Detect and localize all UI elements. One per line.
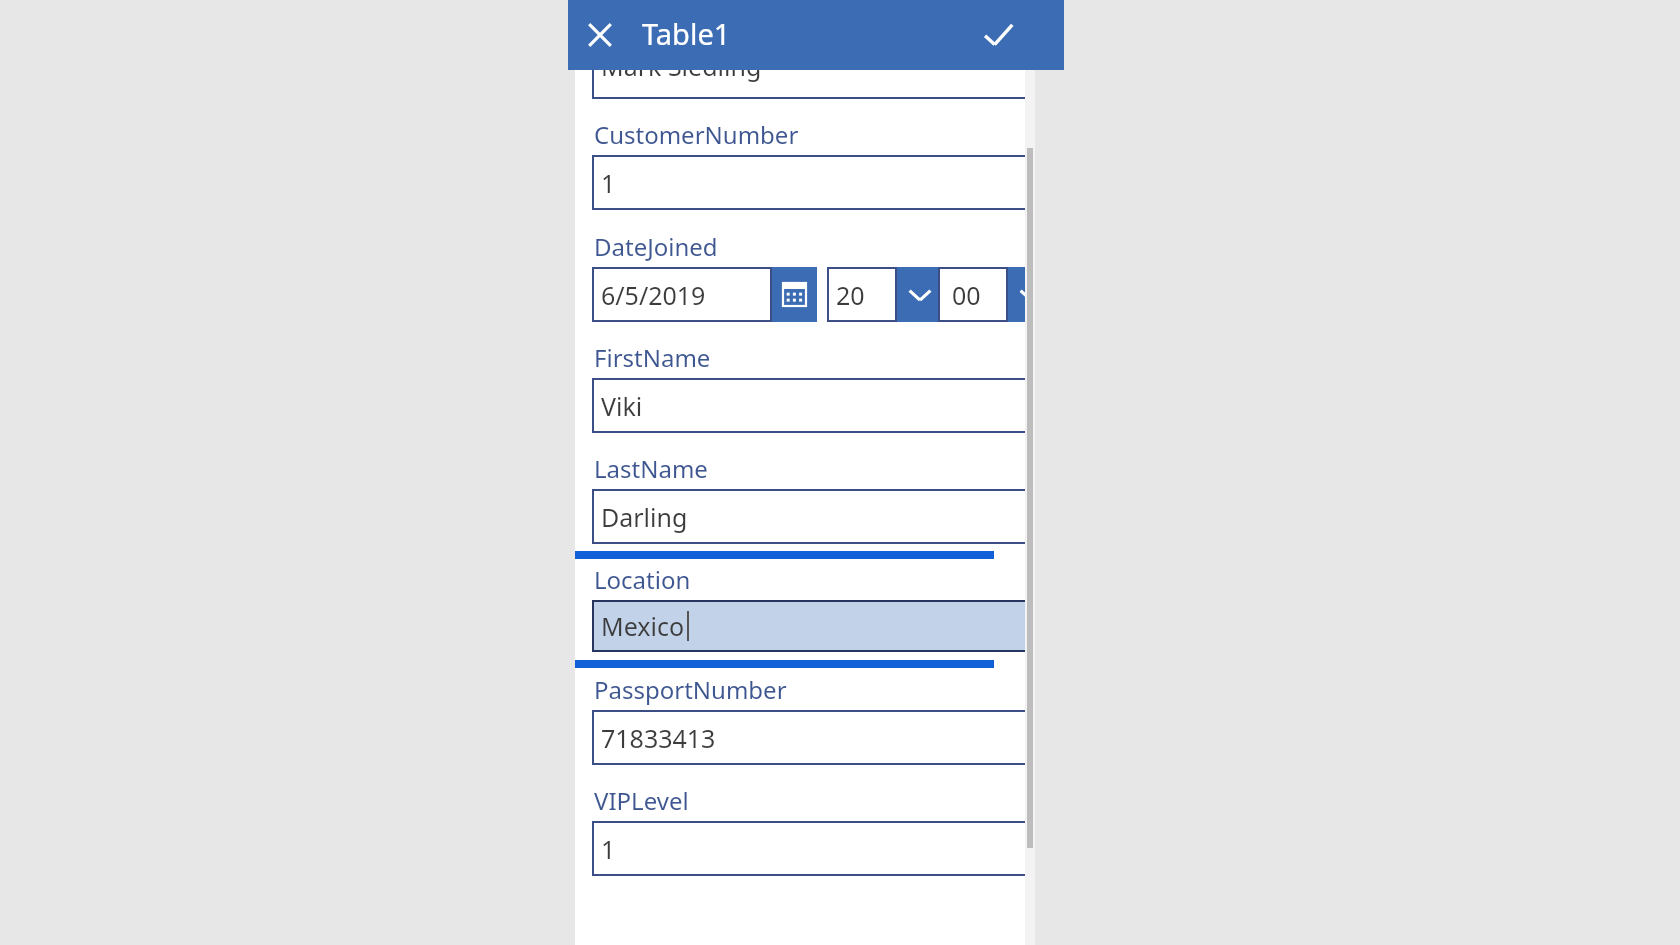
button[interactable]: Pick date	[772, 267, 817, 322]
button[interactable]: 71833413	[592, 710, 1025, 765]
staticText: Mark Siedling	[601, 49, 762, 83]
staticText: VIPLevel	[594, 784, 689, 817]
staticText: CustomerNumber	[594, 118, 799, 151]
staticText: DateJoined	[594, 230, 718, 263]
button[interactable]: Darling	[592, 489, 1025, 544]
staticText: Viki	[601, 389, 643, 423]
staticText: PassportNumber	[594, 673, 787, 706]
button[interactable]: 00	[938, 267, 1008, 322]
button[interactable]: Select minute	[1008, 267, 1025, 322]
staticText: LastName	[594, 452, 708, 485]
button[interactable]: Close	[568, 3, 632, 67]
button[interactable]: 1	[592, 155, 1025, 210]
button[interactable]: Mexico	[592, 600, 1025, 652]
staticText: FirstName	[594, 341, 711, 374]
button[interactable]: Mark Siedling	[592, 32, 1025, 99]
button[interactable]: Select hour	[897, 267, 942, 322]
staticText: 1	[601, 832, 616, 866]
button[interactable]: 20	[827, 267, 897, 322]
staticText: Mexico	[601, 609, 685, 643]
staticText: Table1	[642, 14, 731, 53]
button[interactable]: Viki	[592, 378, 1025, 433]
staticText: 1	[601, 166, 616, 200]
button[interactable]	[575, 551, 994, 668]
staticText: 71833413	[601, 721, 716, 755]
button[interactable]: Save	[966, 3, 1030, 67]
staticText: 00	[952, 278, 981, 312]
button[interactable]: 1	[592, 821, 1025, 876]
staticText: Location	[594, 563, 691, 596]
staticText: Darling	[601, 500, 688, 534]
staticText: 6/5/2019	[601, 278, 706, 312]
staticText: 20	[836, 278, 865, 312]
button[interactable]: 6/5/2019	[592, 267, 772, 322]
